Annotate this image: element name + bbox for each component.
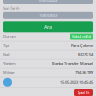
staticText: Durum: [3, 34, 16, 39]
staticText: 794.36 TRY: [75, 70, 93, 75]
staticText: Miktar: [3, 70, 15, 75]
staticText: Para Çekme: [71, 43, 93, 48]
button[interactable]: 15/07/2023: [3, 12, 93, 19]
staticText: Yöntem: [3, 61, 16, 66]
staticText: Kod: [3, 52, 9, 57]
staticText: 15/07/2023: [39, 13, 57, 18]
button[interactable]: 01/07/2023: [3, 0, 93, 4]
staticText: Banka Transfer Manuel: [52, 61, 93, 66]
staticText: Kabul edildi: [72, 34, 91, 39]
staticText: BD7C54: [78, 52, 93, 57]
staticText: 15.05.2023 10:45:45: [60, 80, 93, 85]
staticText: Son Tarih: [3, 5, 19, 11]
staticText: 01/07/2023: [39, 0, 57, 3]
button[interactable]: İptal Et: [74, 89, 93, 96]
button[interactable]: Ara: [3, 21, 93, 32]
staticText: Tipi: [3, 43, 9, 48]
staticText: İptal Et: [78, 90, 89, 95]
staticText: Ara: [44, 23, 52, 30]
